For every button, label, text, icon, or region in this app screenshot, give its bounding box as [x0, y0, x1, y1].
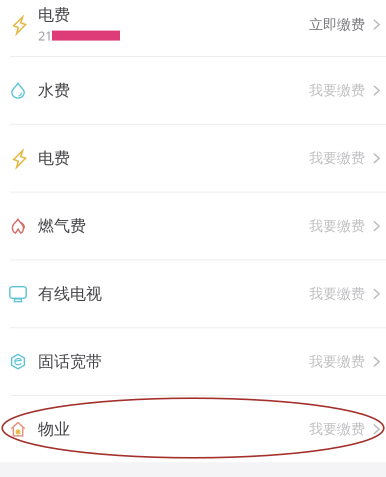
- staticText: 燃气费: [38, 216, 86, 236]
- staticText: 有线电视: [38, 284, 102, 304]
- staticText: 我要缴费: [309, 353, 365, 370]
- staticText: 立即缴费: [309, 16, 365, 33]
- staticText: 21: [38, 27, 52, 44]
- staticText: 我要缴费: [309, 217, 365, 235]
- staticText: 电费: [38, 5, 70, 25]
- staticText: 水费: [38, 80, 70, 100]
- staticText: 固话宽带: [38, 351, 102, 372]
- button[interactable]: 固话宽带: [0, 328, 386, 395]
- button[interactable]: 电费: [0, 0, 386, 56]
- button[interactable]: 燃气费: [0, 193, 386, 259]
- button[interactable]: 物业: [0, 396, 386, 462]
- staticText: 我要缴费: [309, 285, 365, 303]
- button[interactable]: 电费: [0, 125, 386, 192]
- staticText: 物业: [38, 419, 70, 439]
- staticText: 我要缴费: [309, 149, 365, 167]
- staticText: 我要缴费: [309, 420, 365, 438]
- staticText: 我要缴费: [309, 82, 365, 99]
- staticText: 电费: [38, 148, 70, 168]
- button[interactable]: 水费: [0, 57, 386, 124]
- button[interactable]: 有线电视: [0, 260, 386, 327]
